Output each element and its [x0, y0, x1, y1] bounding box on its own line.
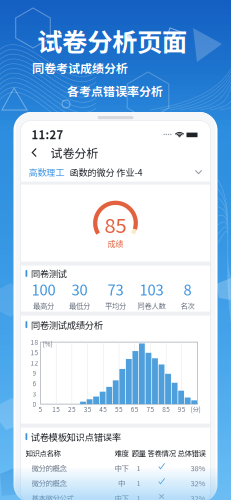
- staticText: 8: [183, 278, 191, 300]
- staticText: 最低分: [69, 300, 90, 311]
- staticText: 成绩: [107, 238, 123, 249]
- staticText: 题量: [131, 448, 145, 458]
- staticText: 总体错误: [177, 448, 205, 458]
- staticText: 38%: [190, 463, 205, 473]
- staticText: 11:27: [31, 126, 63, 143]
- staticText: 中下: [114, 493, 128, 500]
- staticText: 1: [136, 493, 140, 500]
- staticText: 6: [32, 379, 36, 388]
- staticText: 同卷人数: [137, 300, 165, 311]
- staticText: (分): [190, 405, 200, 414]
- staticText: 103: [139, 278, 163, 300]
- staticText: 9: [32, 368, 36, 378]
- staticText: 45: [99, 405, 107, 414]
- staticText: 65: [131, 405, 139, 414]
- staticText: 75: [146, 405, 154, 414]
- staticText: 12: [30, 358, 38, 367]
- staticText: 15: [30, 348, 38, 357]
- staticText: 1: [136, 478, 140, 488]
- button[interactable]: 返回: [25, 143, 43, 163]
- staticText: 100: [31, 278, 55, 300]
- staticText: 95: [178, 405, 186, 414]
- staticText: 25: [68, 405, 76, 414]
- staticText: 同卷考试成绩分析: [32, 59, 128, 76]
- staticText: (%): [42, 339, 52, 348]
- staticText: 0: [32, 399, 36, 409]
- staticText: 85: [104, 210, 126, 239]
- staticText: 同卷测试成绩分析: [31, 318, 103, 331]
- staticText: 各考点错误率分析: [67, 82, 163, 99]
- staticText: 试卷模板知识点错误率: [31, 430, 121, 443]
- staticText: 15: [52, 405, 60, 414]
- staticText: 中: [118, 478, 125, 488]
- button[interactable]: 高数理工: [20, 163, 210, 182]
- staticText: 函数的微分 作业-4: [69, 165, 142, 179]
- staticText: 试卷分析页面: [37, 22, 187, 59]
- staticText: 高数理工: [28, 165, 64, 179]
- staticText: 35: [84, 405, 92, 414]
- staticText: 难度: [114, 448, 128, 458]
- staticText: 名次: [180, 300, 194, 311]
- staticText: 答卷情况: [147, 448, 175, 458]
- staticText: 55: [115, 405, 123, 414]
- staticText: 试卷分析: [50, 144, 98, 161]
- staticText: 85: [162, 405, 170, 414]
- staticText: 32%: [190, 478, 205, 488]
- staticText: 32%: [190, 493, 205, 500]
- staticText: 18: [30, 337, 38, 347]
- staticText: 基本微分公式: [31, 493, 73, 500]
- staticText: 1: [136, 463, 140, 473]
- staticText: 平均分: [105, 300, 126, 311]
- staticText: 微分的概念: [31, 478, 66, 488]
- staticText: 同卷测试: [31, 267, 67, 280]
- staticText: 73: [107, 278, 123, 300]
- staticText: 30: [71, 278, 87, 300]
- staticText: 中下: [114, 463, 128, 473]
- staticText: 5: [39, 405, 43, 414]
- staticText: 3: [32, 389, 36, 398]
- staticText: 最高分: [33, 300, 54, 311]
- staticText: 微分的概念: [31, 463, 66, 473]
- staticText: 知识点名称: [25, 448, 60, 458]
